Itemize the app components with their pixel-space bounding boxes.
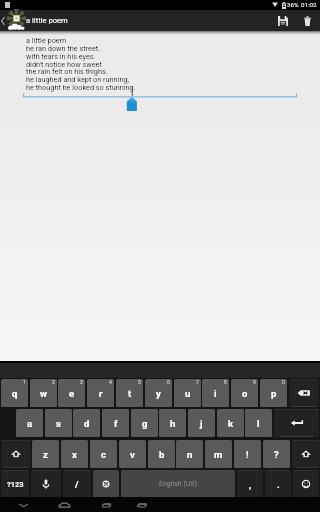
button[interactable]: Home	[51, 497, 77, 512]
staticText: he ran down the street.	[26, 44, 101, 53]
button[interactable]: i	[202, 379, 229, 407]
button[interactable]: ?123	[1, 470, 29, 498]
staticText: r	[99, 388, 103, 399]
staticText: 7	[196, 379, 199, 385]
staticText: 9	[253, 379, 256, 385]
staticText: d	[84, 418, 90, 429]
staticText: i	[214, 388, 217, 399]
staticText: English (US)	[159, 480, 197, 488]
button[interactable]: b	[148, 440, 175, 468]
staticText: he thought he looked so stunning.	[26, 83, 136, 92]
button[interactable]: globe	[93, 470, 119, 498]
button[interactable]: t	[116, 379, 143, 407]
staticText: x	[72, 449, 77, 460]
staticText: u	[185, 388, 191, 399]
staticText: c	[101, 449, 106, 460]
staticText: .	[277, 479, 280, 490]
staticText: ,	[249, 479, 252, 490]
staticText: q	[12, 388, 18, 399]
button[interactable]: g	[131, 409, 158, 437]
staticText: 1	[23, 379, 26, 385]
button[interactable]: a	[16, 409, 43, 437]
button[interactable]: r	[87, 379, 114, 407]
button[interactable]: v	[119, 440, 146, 468]
staticText: o	[242, 388, 248, 399]
button[interactable]: p	[260, 379, 287, 407]
button[interactable]: e	[58, 379, 85, 407]
staticText: !	[246, 449, 249, 460]
staticText: m	[214, 449, 223, 460]
button[interactable]: enter	[274, 409, 319, 437]
staticText: 5	[138, 379, 141, 385]
button[interactable]: x	[61, 440, 88, 468]
staticText: v	[130, 449, 135, 460]
button[interactable]: l	[245, 409, 272, 437]
staticText: 3	[80, 379, 83, 385]
button[interactable]: .	[265, 470, 291, 498]
staticText: the rain felt on his thighs.	[26, 67, 108, 76]
button[interactable]: y	[145, 379, 172, 407]
staticText: b	[159, 449, 165, 460]
staticText: 36%	[287, 1, 299, 8]
staticText: 8	[224, 379, 227, 385]
staticText: w	[40, 388, 47, 399]
button[interactable]: c	[90, 440, 117, 468]
staticText: 01:02	[301, 1, 317, 8]
staticText: a little poem	[26, 36, 67, 45]
button[interactable]: z	[32, 440, 59, 468]
button[interactable]: k	[217, 409, 244, 437]
staticText: /	[75, 479, 79, 490]
staticText: p	[271, 388, 277, 399]
staticText: with tears in his eyes.	[26, 52, 96, 61]
button[interactable]: ?	[263, 440, 290, 468]
staticText: g	[142, 418, 148, 429]
button[interactable]: Recents	[93, 497, 119, 512]
staticText: f	[114, 418, 118, 429]
staticText: e	[69, 388, 75, 399]
button[interactable]: s	[45, 409, 72, 437]
button[interactable]: emoji	[293, 470, 319, 498]
button[interactable]: d	[73, 409, 100, 437]
button[interactable]: back	[289, 379, 319, 407]
staticText: ?	[274, 449, 279, 460]
button[interactable]: f	[102, 409, 129, 437]
staticText: s	[56, 418, 61, 429]
staticText: a little poem	[26, 16, 68, 25]
staticText: h	[170, 418, 176, 429]
staticText: ?123	[7, 480, 24, 489]
button[interactable]: Delete	[294, 10, 320, 31]
staticText: n	[187, 449, 193, 460]
staticText: z	[43, 449, 48, 460]
button[interactable]: w	[30, 379, 57, 407]
button[interactable]: Back	[128, 497, 154, 512]
button[interactable]: n	[176, 440, 203, 468]
button[interactable]: shift	[1, 440, 31, 468]
button[interactable]: mic	[31, 470, 61, 498]
staticText: t	[128, 388, 132, 399]
button[interactable]: u	[174, 379, 201, 407]
button[interactable]: /	[63, 470, 91, 498]
button[interactable]: q	[1, 379, 28, 407]
staticText: 6	[167, 379, 170, 385]
button[interactable]: m	[205, 440, 232, 468]
button[interactable]: o	[231, 379, 258, 407]
button[interactable]: Hide keyboard	[10, 497, 36, 512]
button[interactable]: shift	[292, 440, 320, 468]
staticText: 0	[282, 379, 285, 385]
button[interactable]: ,	[237, 470, 263, 498]
staticText: didn't notice how sweet	[26, 60, 102, 69]
button[interactable]: j	[188, 409, 215, 437]
button[interactable]: !	[234, 440, 261, 468]
staticText: y	[156, 388, 161, 399]
button[interactable]: Save	[270, 10, 296, 31]
staticText: 2	[52, 379, 55, 385]
button[interactable]: English (US)	[121, 470, 235, 498]
staticText: 4	[109, 379, 112, 385]
button[interactable]: Navigate up	[0, 10, 26, 31]
staticText: he laughed and kept on running,	[26, 75, 129, 84]
staticText: j	[200, 418, 203, 429]
staticText: a	[27, 418, 33, 429]
button[interactable]: h	[159, 409, 186, 437]
staticText: k	[228, 418, 234, 429]
staticText: l	[257, 418, 260, 429]
